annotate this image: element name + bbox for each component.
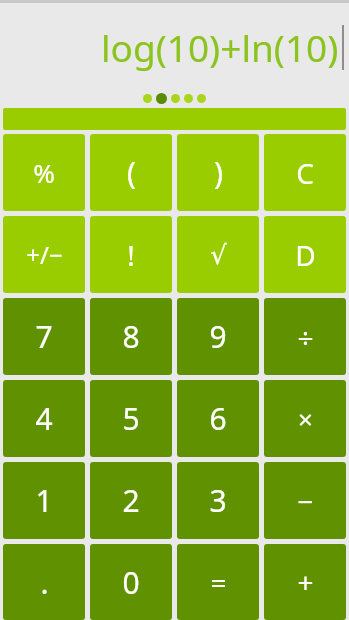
staticText: ( (127, 152, 136, 193)
staticText: D (295, 236, 316, 274)
button[interactable]: 7 (3, 298, 85, 375)
button[interactable]: Page 1 (143, 94, 152, 103)
staticText: 2 (122, 480, 140, 521)
staticText: 5 (122, 398, 140, 439)
button[interactable]: 8 (90, 298, 172, 375)
button[interactable]: Page 4 (184, 94, 193, 103)
staticText: 7 (35, 316, 53, 357)
staticText: ) (214, 152, 223, 193)
staticText: 9 (209, 316, 227, 357)
button[interactable]: Divide (264, 298, 346, 375)
button[interactable]: Plus minus (3, 216, 85, 293)
button[interactable]: Subtract (264, 462, 346, 539)
staticText: √ (210, 240, 227, 270)
button[interactable]: 4 (3, 380, 85, 457)
staticText: 8 (122, 316, 140, 357)
staticText: +/− (26, 238, 63, 271)
button[interactable]: 0 (90, 544, 172, 620)
staticText: 3 (209, 480, 227, 521)
button[interactable]: Equals (177, 544, 259, 620)
staticText: ! (127, 236, 135, 274)
staticText: . (40, 562, 49, 603)
staticText: 6 (209, 398, 227, 439)
button[interactable]: Percent (3, 134, 85, 211)
staticText: C (296, 154, 314, 192)
button[interactable]: Square root (177, 216, 259, 293)
button[interactable]: Memory bar (3, 108, 346, 130)
staticText: + (297, 563, 314, 601)
button[interactable]: Delete (264, 216, 346, 293)
button[interactable]: 9 (177, 298, 259, 375)
staticText: % (33, 155, 55, 190)
staticText: × (298, 401, 313, 436)
button[interactable]: Close parenthesis (177, 134, 259, 211)
button[interactable]: Open parenthesis (90, 134, 172, 211)
button[interactable]: Add (264, 544, 346, 620)
button[interactable]: 1 (3, 462, 85, 539)
button[interactable]: Page 5 (197, 94, 206, 103)
staticText: 4 (35, 398, 53, 439)
button[interactable]: Decimal point (3, 544, 85, 620)
button[interactable]: 3 (177, 462, 259, 539)
staticText: 1 (35, 480, 53, 521)
staticText: ÷ (297, 318, 314, 356)
button[interactable]: Page 2 (156, 93, 167, 104)
button[interactable]: 5 (90, 380, 172, 457)
button[interactable]: Multiply (264, 380, 346, 457)
button[interactable]: 6 (177, 380, 259, 457)
staticText: log(10)+ln(10) (101, 22, 339, 72)
button[interactable]: Factorial (90, 216, 172, 293)
button[interactable]: 2 (90, 462, 172, 539)
staticText: − (297, 482, 314, 520)
staticText: 0 (122, 562, 140, 603)
staticText: = (210, 563, 227, 601)
button[interactable]: Clear (264, 134, 346, 211)
button[interactable]: Page 3 (171, 94, 180, 103)
